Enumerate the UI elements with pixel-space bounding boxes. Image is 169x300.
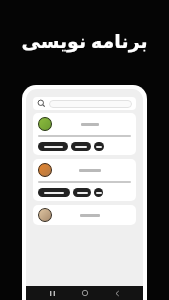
other: Search (37, 99, 46, 108)
button[interactable]: Search (33, 97, 136, 110)
button[interactable] (33, 159, 136, 201)
button[interactable] (33, 205, 136, 225)
button[interactable]: Recents (46, 287, 58, 299)
button[interactable]: Home (79, 287, 91, 299)
button[interactable] (94, 188, 103, 197)
button[interactable] (73, 188, 91, 197)
button[interactable] (38, 188, 70, 197)
button[interactable] (38, 142, 68, 151)
staticText: برنامه نویسی (21, 28, 148, 54)
button[interactable] (94, 142, 104, 151)
button[interactable] (71, 142, 91, 151)
button[interactable]: Back (111, 287, 123, 299)
button[interactable] (33, 113, 136, 155)
